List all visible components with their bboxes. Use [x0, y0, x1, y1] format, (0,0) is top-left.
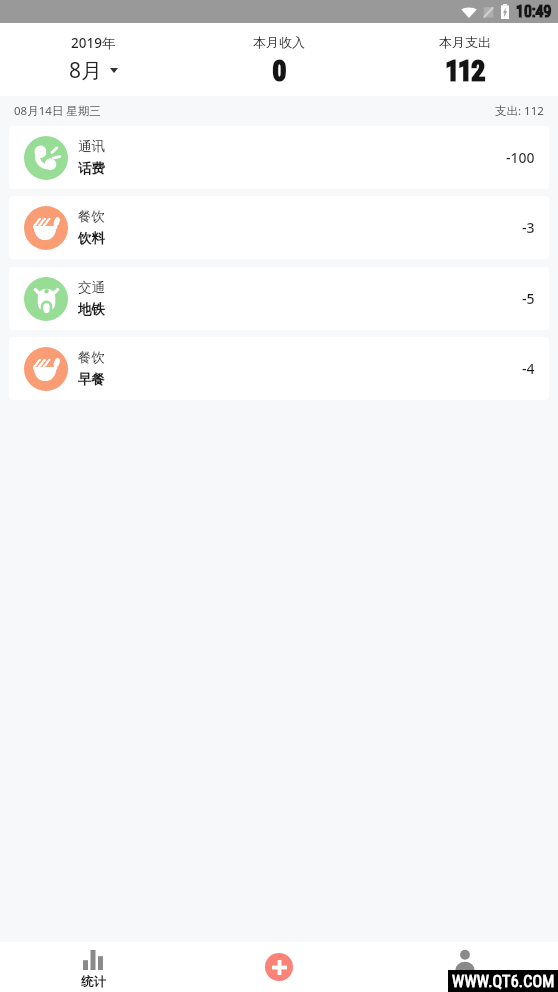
- button[interactable]: Profile: [372, 942, 558, 992]
- staticText: 交通: [78, 279, 105, 296]
- staticText: 话费: [78, 160, 105, 177]
- staticText: 本月支出: [439, 34, 491, 50]
- staticText: -4: [522, 359, 535, 378]
- staticText: 通讯: [78, 138, 105, 155]
- staticText: 0: [273, 56, 286, 86]
- staticText: 112: [446, 56, 485, 86]
- staticText: 10:49: [516, 2, 552, 21]
- staticText: -5: [522, 289, 535, 308]
- staticText: 10:49: [516, 2, 552, 21]
- button[interactable]: 本月支出: [372, 23, 558, 96]
- staticText: 统计: [81, 974, 106, 990]
- staticText: 112: [446, 56, 485, 86]
- staticText: 支出: 112: [495, 103, 544, 119]
- staticText: 0: [273, 56, 286, 86]
- staticText: -3: [522, 218, 535, 237]
- staticText: 餐饮: [78, 349, 105, 366]
- button[interactable]: 餐饮: [9, 337, 549, 400]
- staticText: 餐饮: [78, 208, 105, 225]
- staticText: -100: [506, 148, 535, 167]
- staticText: 饮料: [78, 230, 105, 247]
- staticText: 2019年: [71, 34, 116, 52]
- staticText: 地铁: [78, 301, 105, 318]
- button[interactable]: 本月收入: [186, 23, 372, 96]
- staticText: 8月: [69, 56, 103, 85]
- staticText: WWW.QT6.COM: [452, 972, 555, 991]
- button[interactable]: 2019年: [0, 23, 186, 96]
- staticText: 08月14日 星期三: [14, 103, 101, 119]
- staticText: 本月收入: [253, 34, 305, 50]
- button[interactable]: Add record: [265, 953, 293, 981]
- button[interactable]: 统计: [0, 942, 186, 992]
- button[interactable]: 通讯: [9, 126, 549, 189]
- staticText: 早餐: [78, 371, 105, 388]
- button[interactable]: 交通: [9, 267, 549, 330]
- button[interactable]: 餐饮: [9, 196, 549, 259]
